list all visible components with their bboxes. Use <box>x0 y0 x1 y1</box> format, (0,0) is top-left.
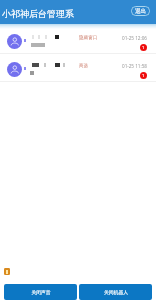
button[interactable]: Notification <box>4 268 10 275</box>
staticText: 小祁神后台管理系 <box>2 8 74 19</box>
button[interactable]: 关闭机器人 <box>79 284 152 300</box>
button[interactable]: 退出 <box>131 6 150 16</box>
button[interactable]: 关闭声音 <box>4 284 77 300</box>
staticText: 隐藏窗口 <box>79 35 98 41</box>
staticText: 01-25 11:58 <box>122 63 147 69</box>
staticText: 1 <box>142 45 145 51</box>
button[interactable]: 隐藏窗口 <box>0 27 156 56</box>
staticText: 商选 <box>79 63 89 69</box>
button[interactable]: 商选 <box>0 55 156 84</box>
staticText: 1 <box>142 73 145 79</box>
staticText: 关闭机器人 <box>104 289 128 295</box>
staticText: 退出 <box>135 8 147 15</box>
staticText: 关闭声音 <box>31 289 51 295</box>
staticText: 01-25 12:06 <box>122 35 147 41</box>
